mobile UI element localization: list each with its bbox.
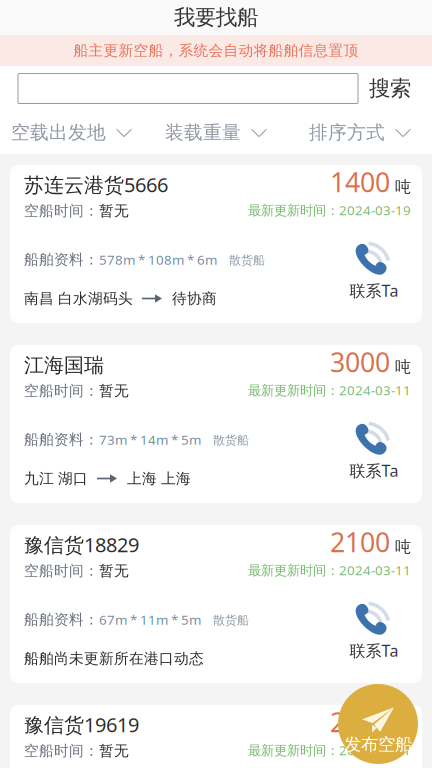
staticText: 船舶尚未更新所在港口动态 — [24, 649, 204, 667]
staticText: 暂无 — [99, 382, 129, 400]
staticText: 船舶资料： — [24, 430, 99, 448]
staticText: 吨 — [390, 177, 411, 197]
staticText: 空船时间： — [24, 562, 99, 580]
staticText: 暂无 — [99, 562, 129, 580]
staticText: 九江 湖口 — [24, 469, 88, 487]
staticText: 空载出发地 — [11, 121, 106, 144]
staticText: 暂无 — [99, 742, 129, 760]
staticText: 船主更新空船，系统会自动将船舶信息置顶 — [73, 41, 358, 59]
staticText: 豫信货18829 — [24, 531, 139, 558]
button[interactable]: 搜索 — [364, 73, 416, 103]
button[interactable]: 空载出发地 — [5, 111, 138, 154]
staticText: 排序方式 — [309, 121, 385, 144]
staticText: 上海 上海 — [127, 469, 191, 487]
button[interactable]: 豫信货18829 — [10, 525, 422, 683]
staticText: 暂无 — [99, 202, 129, 220]
staticText: 散货船 — [201, 613, 249, 627]
staticText: 江海国瑞 — [24, 353, 104, 378]
staticText: 吨 — [390, 717, 411, 737]
staticText: 最新更新时间：2024-03-11 — [248, 741, 411, 759]
staticText: 1400 — [330, 164, 390, 200]
staticText: 联系Ta — [349, 640, 398, 661]
staticText: 578m * 108m * 6m — [99, 251, 217, 268]
staticText: 吨 — [390, 537, 411, 557]
button[interactable]: 装载重量 — [159, 111, 273, 154]
button[interactable]: 发布空船 — [338, 684, 418, 764]
staticText: 散货船 — [201, 433, 249, 447]
staticText: 搜索 — [369, 75, 411, 102]
staticText: 空船时间： — [24, 382, 99, 400]
staticText: 发布空船 — [344, 734, 412, 755]
staticText: 最新更新时间：2024-03-19 — [248, 201, 411, 219]
staticText: 联系Ta — [349, 280, 398, 301]
staticText: 散货船 — [217, 253, 265, 267]
staticText: 豫信货19619 — [24, 711, 139, 738]
staticText: 苏连云港货5666 — [24, 171, 168, 198]
staticText: 最新更新时间：2024-03-11 — [248, 381, 411, 399]
button[interactable]: 排序方式 — [303, 111, 417, 154]
staticText: 空船时间： — [24, 742, 99, 760]
staticText: 吨 — [390, 357, 411, 377]
staticText: 67m * 11m * 5m — [99, 611, 201, 628]
staticText: 我要找船 — [174, 4, 258, 31]
staticText: 2000 — [330, 704, 390, 740]
staticText: 船舶资料： — [24, 610, 99, 628]
staticText: 最新更新时间：2024-03-11 — [248, 561, 411, 579]
staticText: 南昌 白水湖码头 — [24, 289, 133, 307]
staticText: 联系Ta — [349, 460, 398, 481]
staticText: 船舶资料： — [24, 250, 99, 268]
button[interactable]: 江海国瑞 — [10, 345, 422, 503]
staticText: 待协商 — [172, 289, 217, 307]
staticText: 空船时间： — [24, 202, 99, 220]
button[interactable]: 豫信货19619 — [10, 705, 422, 768]
staticText: 73m * 14m * 5m — [99, 431, 201, 448]
staticText: 3000 — [330, 344, 390, 380]
staticText: 2100 — [330, 524, 390, 560]
button[interactable]: 苏连云港货5666 — [10, 165, 422, 323]
staticText: 装载重量 — [165, 121, 241, 144]
